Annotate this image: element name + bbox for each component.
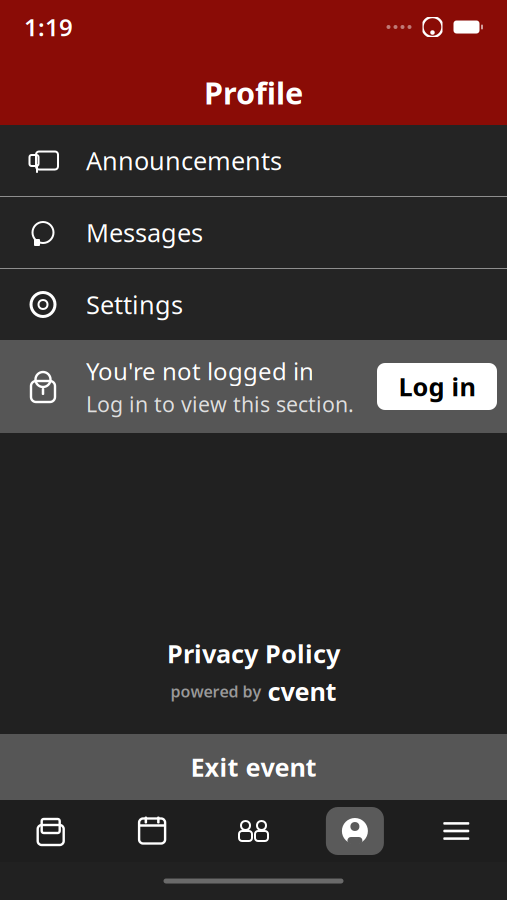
button[interactable]: Announcements [0,125,507,196]
staticText: Log in [398,370,475,403]
staticText: You're not logged in [86,355,314,387]
button[interactable]: Log in [377,363,497,410]
button[interactable]: Attendees [203,800,304,862]
staticText: Privacy Policy [167,637,340,670]
button[interactable]: Exit event [0,734,507,800]
staticText: Announcements [86,144,282,177]
button[interactable]: Schedule [101,800,203,862]
staticText: powered by [170,681,261,702]
staticText: 1:19 [24,11,73,43]
staticText: cvent [267,674,336,708]
button[interactable]: Privacy Policy [167,637,340,670]
staticText: Messages [86,216,203,249]
button[interactable]: Profile [304,800,406,862]
button[interactable]: More [406,800,507,862]
staticText: Profile [204,72,303,113]
staticText: Settings [86,288,183,321]
button[interactable]: Home [0,800,101,862]
button[interactable]: Settings [0,269,507,340]
staticText: Log in to view this section. [86,390,354,418]
staticText: Exit event [190,750,316,784]
button[interactable]: Messages [0,197,507,268]
